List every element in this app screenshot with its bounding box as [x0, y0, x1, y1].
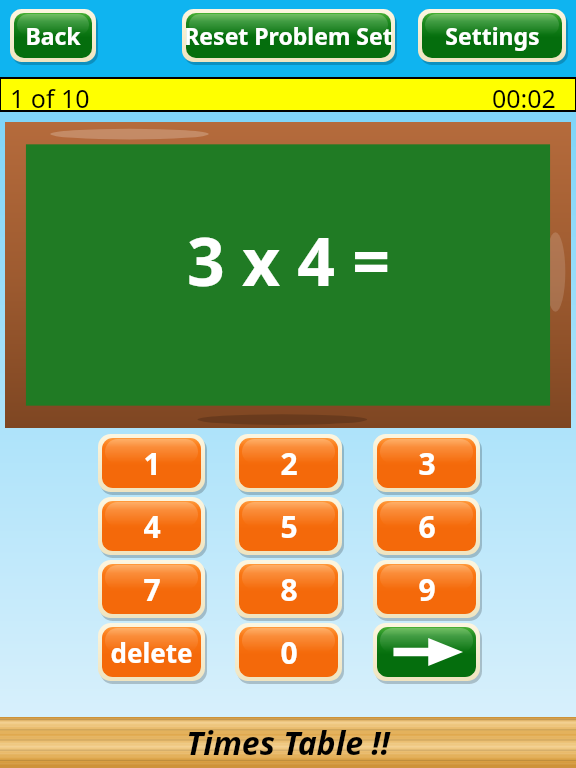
button[interactable]: 8: [235, 560, 342, 618]
button[interactable]: 7: [98, 560, 205, 618]
button[interactable]: Reset Problem Set: [182, 9, 395, 62]
button[interactable]: 5: [235, 497, 342, 555]
button[interactable]: Settings: [418, 9, 566, 62]
staticText: Settings: [445, 20, 540, 51]
staticText: Reset Problem Set: [184, 20, 393, 51]
staticText: 5: [280, 506, 298, 547]
button[interactable]: 9: [373, 560, 480, 618]
staticText: 00:02: [492, 81, 556, 115]
button[interactable]: delete: [98, 623, 205, 681]
button[interactable]: 1: [98, 434, 205, 492]
staticText: 7: [143, 569, 161, 610]
button[interactable]: Back: [10, 9, 96, 62]
button[interactable]: 2: [235, 434, 342, 492]
staticText: 2: [280, 443, 298, 484]
button[interactable]: 4: [98, 497, 205, 555]
button[interactable]: Submit answer: [373, 623, 480, 681]
staticText: 1 of 10: [10, 81, 90, 115]
staticText: delete: [110, 635, 193, 670]
button[interactable]: 6: [373, 497, 480, 555]
staticText: 9: [418, 569, 436, 610]
staticText: 3: [418, 443, 436, 484]
button[interactable]: 3: [373, 434, 480, 492]
staticText: 0: [280, 632, 298, 673]
staticText: 8: [280, 569, 298, 610]
staticText: 3 x 4 =: [187, 215, 390, 305]
button[interactable]: 0: [235, 623, 342, 681]
staticText: Times Table !!: [186, 721, 390, 765]
staticText: 4: [143, 506, 161, 547]
staticText: 1: [143, 443, 161, 484]
staticText: Back: [25, 20, 81, 51]
staticText: 6: [418, 506, 436, 547]
